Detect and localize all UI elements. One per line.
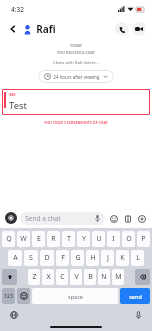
staticText: YOU TOOK 3 SCREENSHOTS OF CHAT <box>0 120 152 125</box>
staticText: N <box>101 272 107 282</box>
staticText: W <box>20 234 27 244</box>
button[interactable]: W <box>17 231 30 247</box>
staticText: 24 hours after viewing <box>53 74 100 80</box>
button[interactable]: L <box>131 250 144 266</box>
staticText: S <box>29 253 33 263</box>
button[interactable]: C <box>56 269 68 285</box>
button[interactable]: More <box>136 213 147 224</box>
staticText: YOU DELETED A CHAT <box>0 50 152 55</box>
button[interactable]: send <box>120 288 150 304</box>
staticText: Y <box>82 234 86 244</box>
button[interactable]: H <box>86 250 99 266</box>
staticText: Q <box>6 234 12 244</box>
button[interactable]: Shift <box>2 269 17 285</box>
staticText: G <box>75 253 81 263</box>
staticText: X <box>46 272 51 282</box>
button[interactable]: O <box>122 231 135 247</box>
button[interactable]: R <box>47 231 60 247</box>
staticText: A <box>13 253 18 263</box>
staticText: T <box>67 234 71 244</box>
button[interactable]: Video call <box>132 22 146 36</box>
staticText: F <box>61 253 65 263</box>
staticText: V <box>74 272 79 282</box>
staticText: E <box>37 234 41 244</box>
button[interactable]: M <box>112 269 124 285</box>
staticText: C <box>60 272 65 282</box>
button[interactable]: Send a chat <box>20 212 105 225</box>
button[interactable]: B <box>84 269 96 285</box>
staticText: send <box>129 293 142 300</box>
button[interactable]: E <box>32 231 45 247</box>
staticText: D <box>44 253 50 263</box>
staticText: 4:32 <box>11 5 24 14</box>
staticText: L <box>136 253 140 263</box>
staticText: space <box>68 293 83 300</box>
button[interactable]: space <box>32 288 118 304</box>
staticText: ME <box>9 92 16 98</box>
staticText: H <box>90 253 96 263</box>
button[interactable]: U <box>92 231 105 247</box>
staticText: Send a chat <box>25 214 61 223</box>
staticText: Chats with Rafi delete... <box>0 60 152 66</box>
button[interactable]: G <box>71 250 84 266</box>
button[interactable]: I <box>107 231 120 247</box>
button[interactable]: A <box>8 250 22 266</box>
button[interactable]: N <box>98 269 110 285</box>
button[interactable]: Q <box>2 231 15 247</box>
staticText: M <box>115 272 122 282</box>
button[interactable]: Backspace <box>135 269 150 285</box>
staticText: Z <box>32 272 37 282</box>
button[interactable]: Camera <box>5 212 17 224</box>
staticText: P <box>141 234 146 244</box>
button[interactable]: Language <box>9 310 19 320</box>
button[interactable]: T <box>62 231 75 247</box>
staticText: TODAY <box>0 43 152 48</box>
staticText: R <box>51 234 56 244</box>
staticText: Rafi <box>36 22 56 36</box>
button[interactable]: 123 <box>2 288 15 304</box>
button[interactable]: F <box>56 250 69 266</box>
staticText: 123 <box>4 293 13 300</box>
staticText: B <box>88 272 93 282</box>
staticText: Test <box>9 99 27 112</box>
button[interactable]: Emoji <box>17 288 30 304</box>
button[interactable]: Stickers <box>108 213 119 224</box>
button[interactable]: Voice input <box>133 310 143 320</box>
staticText: U <box>96 234 102 244</box>
button[interactable]: Gallery <box>122 213 133 224</box>
button[interactable]: J <box>101 250 114 266</box>
staticText: J <box>107 253 109 263</box>
button[interactable]: K <box>116 250 129 266</box>
button[interactable]: X <box>42 269 54 285</box>
button[interactable]: S <box>24 250 38 266</box>
button[interactable]: V <box>70 269 82 285</box>
button[interactable]: Back <box>6 22 20 36</box>
button[interactable]: D <box>40 250 54 266</box>
button[interactable]: 24 hours after viewing <box>38 70 114 83</box>
button[interactable]: Z <box>28 269 40 285</box>
button[interactable]: P <box>137 231 150 247</box>
staticText: O <box>126 234 132 244</box>
button[interactable]: Y <box>77 231 90 247</box>
staticText: K <box>120 253 125 263</box>
staticText: I <box>112 234 115 244</box>
button[interactable]: Call <box>115 22 129 36</box>
